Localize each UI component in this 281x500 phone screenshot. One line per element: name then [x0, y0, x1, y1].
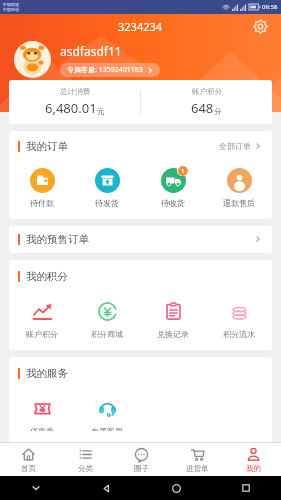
staticText: 6,480.01	[45, 99, 97, 117]
button[interactable]: 退款售后	[206, 163, 272, 210]
button[interactable]: 专属客服: 13592401183	[60, 63, 160, 77]
staticText: 专属客服: 13592401183	[67, 65, 143, 75]
staticText: 09:58	[262, 3, 278, 11]
staticText: 全部订单	[219, 141, 251, 151]
staticText: 我的积分	[26, 270, 68, 283]
staticText: 进货单	[186, 464, 209, 473]
staticText: 待收货	[161, 198, 185, 208]
button[interactable]: 分类	[57, 443, 113, 476]
staticText: 账户积分	[192, 87, 222, 96]
staticText: 3234234	[118, 19, 163, 34]
staticText: 分	[214, 107, 222, 116]
button[interactable]: 优惠券	[9, 391, 74, 433]
button[interactable]: 专属客服	[74, 391, 140, 433]
staticText: 账户积分	[26, 329, 58, 339]
staticText: 我的预售订单	[26, 233, 89, 246]
staticText: 分类	[78, 464, 93, 473]
staticText: 待发货	[95, 198, 119, 208]
button[interactable]: 待发货	[74, 163, 140, 210]
button[interactable]: 积分流水	[206, 294, 272, 341]
staticText: 专属客服	[91, 426, 123, 431]
button[interactable]: 我的预售订单	[9, 226, 272, 252]
staticText: 积分流水	[223, 329, 255, 339]
button[interactable]: 兑换记录	[140, 294, 206, 341]
staticText: 我的订单	[26, 140, 68, 153]
button[interactable]: 积分商城	[74, 294, 140, 341]
staticText: 元	[97, 107, 105, 116]
staticText: 总计消费	[60, 87, 90, 96]
button[interactable]: 首页	[0, 443, 57, 476]
staticText: 1	[181, 167, 185, 175]
button[interactable]: 我的订单	[9, 133, 272, 159]
button[interactable]: 圈子	[113, 443, 169, 476]
button[interactable]: 待付款	[9, 163, 74, 210]
staticText: 圈子	[134, 464, 149, 473]
staticText: 中国移动	[3, 7, 19, 12]
staticText: 648	[191, 99, 214, 117]
staticText: 积分商城	[91, 329, 123, 339]
staticText: 我的	[246, 464, 261, 473]
button[interactable]: 进货单	[169, 443, 225, 476]
staticText: 优惠券	[30, 426, 54, 431]
staticText: asdfasdf11	[60, 43, 122, 59]
button[interactable]: 我的	[225, 443, 281, 476]
staticText: 待付款	[30, 198, 54, 208]
button[interactable]: 头像	[14, 41, 51, 78]
staticText: 兑换记录	[157, 329, 189, 339]
button[interactable]: 1	[140, 163, 206, 210]
staticText: 首页	[21, 464, 36, 473]
staticText: 退款售后	[223, 198, 255, 208]
staticText: 我的服务	[26, 367, 68, 380]
staticText: 中国联通	[3, 2, 19, 7]
button[interactable]: 账户积分	[9, 294, 74, 341]
button[interactable]: 设置	[249, 15, 271, 37]
